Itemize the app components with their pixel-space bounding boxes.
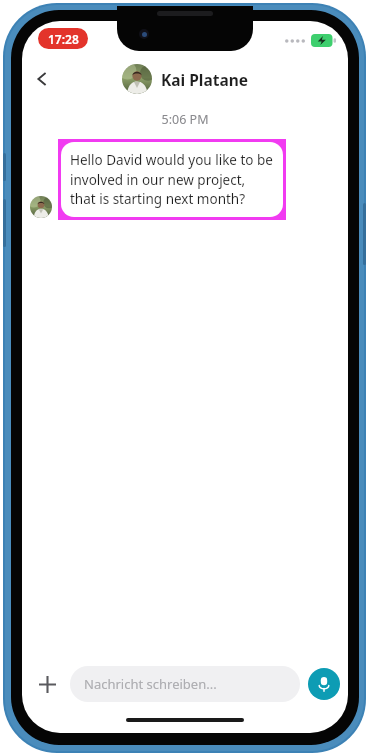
button[interactable]: Attach [30, 667, 64, 701]
staticText: Kai Platane [161, 69, 249, 90]
button[interactable]: Record voice message [308, 668, 340, 700]
button[interactable]: Nachricht schreiben... [70, 666, 300, 702]
staticText: 5:06 PM [22, 111, 348, 128]
staticText: Nachricht schreiben... [84, 675, 217, 693]
staticText: Hello David would you like to be involve… [70, 151, 274, 208]
button[interactable]: Hello David would you like to be involve… [61, 142, 283, 217]
button[interactable]: Kai Platane [122, 64, 249, 94]
button[interactable]: 17:28 [38, 28, 88, 49]
button[interactable]: Back [22, 59, 62, 99]
other: Battery charging [311, 34, 336, 47]
staticText: 17:28 [48, 31, 79, 47]
